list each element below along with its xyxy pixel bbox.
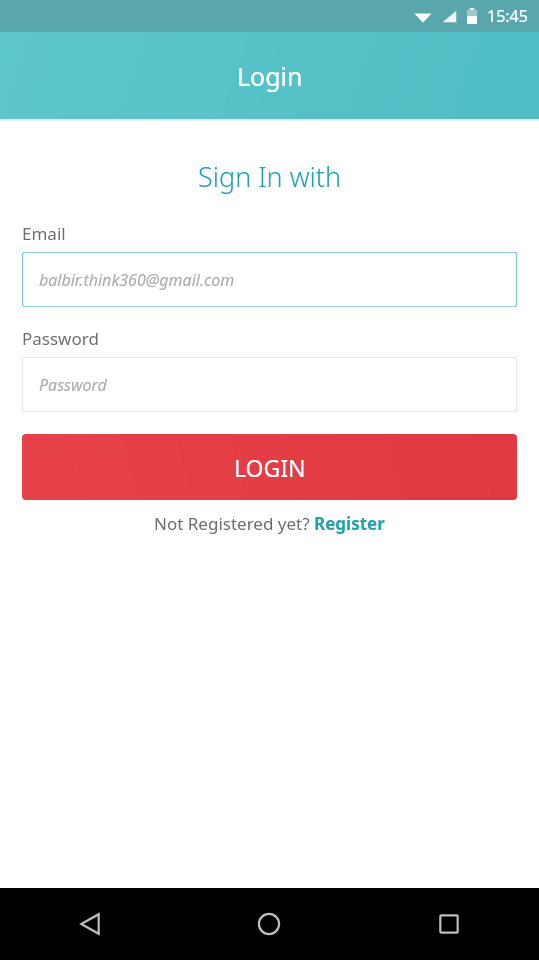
staticText: balbir.think360@gmail.com (39, 269, 235, 291)
staticText: Password (22, 327, 99, 350)
staticText: Login (237, 59, 303, 93)
button[interactable]: Back (0, 888, 179, 960)
staticText: 15:45 (487, 5, 528, 27)
button[interactable]: Home (179, 888, 359, 960)
staticText: LOGIN (234, 452, 306, 483)
button[interactable]: Recent apps (359, 888, 539, 960)
button[interactable]: Password (22, 357, 517, 412)
staticText: Email (22, 222, 66, 245)
button[interactable]: balbir.think360@gmail.com (22, 252, 517, 307)
button[interactable]: Register (314, 512, 385, 535)
button[interactable]: LOGIN (22, 434, 517, 500)
staticText: Password (39, 374, 107, 396)
staticText: Register (314, 512, 385, 535)
staticText: Sign In with (0, 158, 539, 195)
staticText: Not Registered yet? (154, 512, 314, 535)
